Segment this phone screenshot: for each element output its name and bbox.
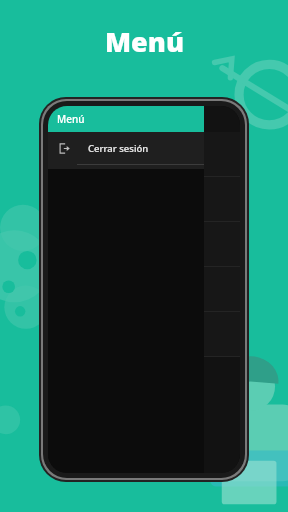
staticText: Cerrar sesión	[88, 142, 149, 155]
other: Cerrar sesión	[59, 143, 70, 154]
staticText: Menú	[105, 23, 184, 60]
button[interactable]: Cerrar sesión	[48, 132, 204, 164]
staticText: Menú	[57, 112, 85, 126]
